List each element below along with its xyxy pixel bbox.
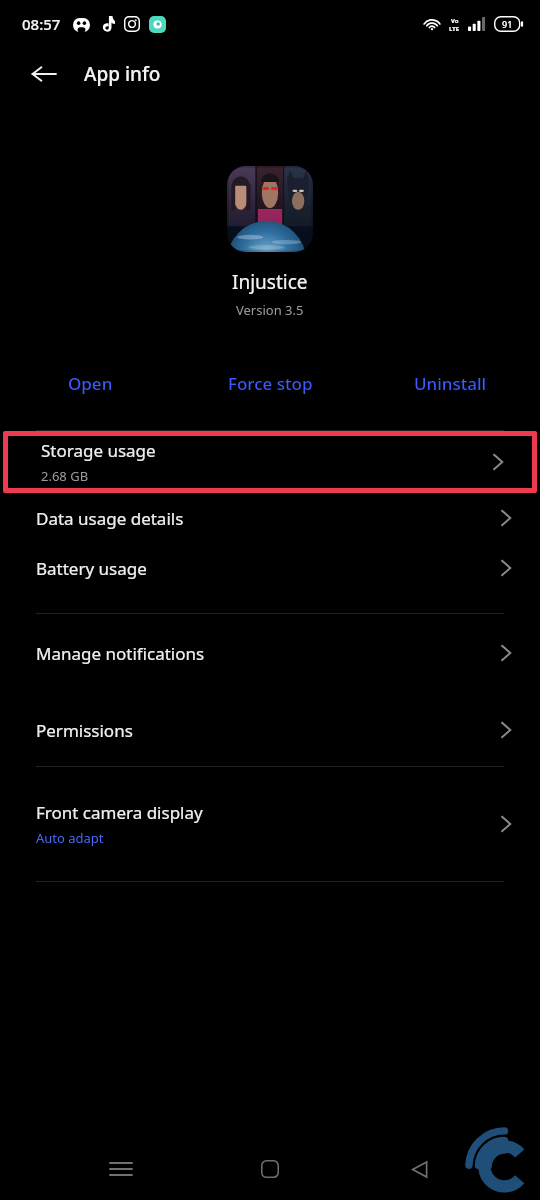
staticText: LTE	[449, 25, 460, 32]
button[interactable]: Permissions	[0, 706, 540, 754]
staticText: Permissions	[36, 719, 133, 742]
staticText: 08:57	[22, 14, 61, 34]
staticText: App info	[84, 61, 161, 87]
staticText: Data usage details	[36, 507, 184, 530]
button[interactable]: Home	[242, 1141, 298, 1197]
button[interactable]: Recent apps	[93, 1141, 149, 1197]
staticText: Force stop	[228, 372, 313, 395]
staticText: Battery usage	[36, 557, 147, 580]
button[interactable]: Data usage details	[0, 493, 540, 543]
staticText: Open	[68, 372, 113, 395]
button[interactable]: Uninstall	[360, 361, 540, 405]
staticText: Manage notifications	[36, 642, 205, 665]
button[interactable]: Back	[22, 52, 66, 96]
button[interactable]: Battery usage	[0, 543, 540, 593]
staticText: Version 3.5	[236, 301, 304, 319]
staticText: Auto adapt	[36, 829, 104, 847]
staticText: Injustice	[232, 269, 308, 295]
button[interactable]: Storage usage	[8, 436, 532, 488]
staticText: 2.68 GB	[41, 467, 89, 485]
staticText: Front camera display	[36, 801, 203, 824]
button[interactable]: Back	[391, 1141, 447, 1197]
button[interactable]: Open	[0, 361, 180, 405]
staticText: 91	[502, 18, 513, 30]
button[interactable]: Front camera display	[0, 795, 540, 853]
button[interactable]: Force stop	[180, 361, 360, 405]
staticText: Uninstall	[414, 372, 487, 395]
staticText: Vo	[451, 17, 459, 25]
staticText: Storage usage	[41, 439, 156, 462]
button[interactable]: Manage notifications	[0, 628, 540, 678]
